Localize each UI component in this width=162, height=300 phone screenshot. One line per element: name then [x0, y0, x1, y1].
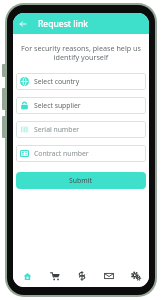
- button[interactable]: Settings: [122, 265, 149, 287]
- staticText: Request link: [38, 18, 88, 30]
- staticText: Select country: [34, 77, 80, 86]
- button[interactable]: Submit: [16, 172, 146, 189]
- staticText: Submit: [69, 176, 93, 185]
- button[interactable]: Home: [13, 265, 41, 287]
- button[interactable]: Serial number: [16, 121, 146, 138]
- staticText: Select supplier: [34, 101, 81, 110]
- button[interactable]: Messages: [95, 265, 122, 287]
- staticText: Serial number: [34, 125, 80, 134]
- button[interactable]: Select country: [16, 73, 146, 90]
- button[interactable]: Contract number: [16, 145, 146, 162]
- button[interactable]: Back: [16, 17, 30, 31]
- staticText: For security reasons, please help us ide…: [19, 43, 143, 63]
- button[interactable]: Payments: [68, 265, 95, 287]
- button[interactable]: Cart: [41, 265, 68, 287]
- button[interactable]: Select supplier: [16, 97, 146, 114]
- staticText: Contract number: [34, 149, 89, 158]
